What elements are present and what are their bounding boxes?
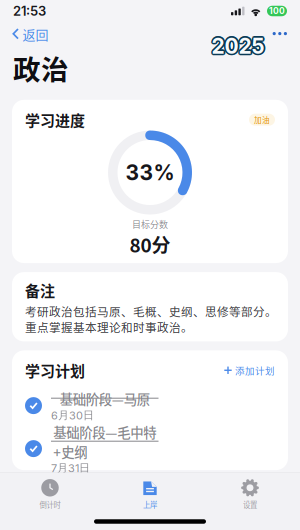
staticText: 6月30日: [51, 408, 94, 422]
staticText: 学习计划: [25, 359, 85, 381]
staticText: 7月31日: [51, 461, 90, 475]
staticText: 返回: [22, 25, 48, 43]
button[interactable]: 基础阶段—马原: [12, 384, 288, 427]
staticText: 2025: [212, 32, 265, 57]
staticText: 重点掌握基本理论和时事政治。: [25, 319, 193, 335]
staticText: 2025: [210, 34, 263, 60]
staticText: 基础阶段—马原: [60, 389, 150, 408]
button[interactable]: 返回: [0, 22, 56, 46]
staticText: 倒计时: [39, 499, 60, 510]
staticText: 2025: [213, 32, 266, 57]
staticText: 设置: [243, 499, 257, 510]
staticText: 80分: [129, 231, 170, 258]
staticText: 2025: [212, 33, 265, 59]
staticText: 2025: [213, 34, 266, 60]
staticText: 21:53: [13, 3, 46, 19]
button[interactable]: 基础阶段—毛中特+史纲: [12, 427, 288, 470]
button[interactable]: 添加计划: [224, 361, 275, 379]
button[interactable]: More options: [265, 14, 300, 54]
staticText: 政治: [13, 48, 69, 88]
staticText: 33%: [125, 160, 174, 185]
staticText: 添加计划: [235, 363, 275, 377]
button[interactable]: 倒计时: [0, 473, 100, 513]
button[interactable]: 设置: [200, 473, 300, 513]
staticText: 加油: [254, 114, 270, 125]
staticText: 目标分数: [132, 217, 168, 230]
staticText: 100: [269, 6, 285, 16]
staticText: 考研政治包括马原、毛概、史纲、思修等部分。: [25, 303, 277, 320]
staticText: 学习进度: [25, 109, 85, 130]
staticText: 上岸: [143, 499, 157, 510]
staticText: 2025: [213, 33, 266, 59]
staticText: 2025: [212, 35, 265, 60]
staticText: 2025: [210, 32, 263, 57]
staticText: 基础阶段—毛中特+史纲: [53, 422, 156, 461]
staticText: 2025: [210, 33, 263, 59]
button[interactable]: 上岸: [100, 473, 200, 513]
staticText: 备注: [25, 279, 55, 301]
